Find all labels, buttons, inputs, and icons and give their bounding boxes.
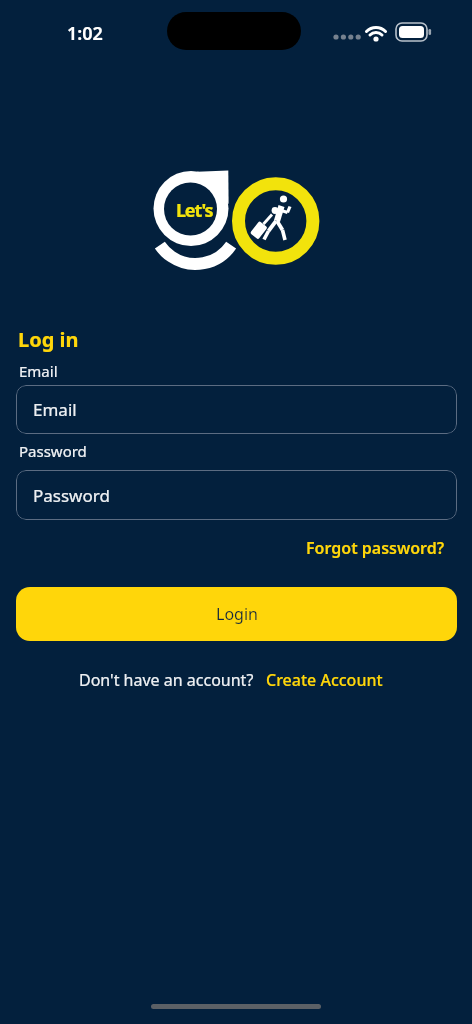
button[interactable]: Login xyxy=(16,587,457,641)
staticText: Let's xyxy=(176,198,213,223)
staticText: Password xyxy=(33,484,110,507)
staticText: 1:02 xyxy=(67,21,103,46)
staticText: Password xyxy=(19,441,87,461)
staticText: Log in xyxy=(18,326,79,353)
button[interactable]: Password xyxy=(16,470,457,520)
staticText: Email xyxy=(19,361,58,381)
staticText: Login xyxy=(216,603,258,625)
button[interactable]: Create Account xyxy=(266,669,383,691)
staticText: Email xyxy=(33,398,77,421)
button[interactable]: Email xyxy=(16,385,457,434)
staticText: Don't have an account? xyxy=(79,669,254,691)
